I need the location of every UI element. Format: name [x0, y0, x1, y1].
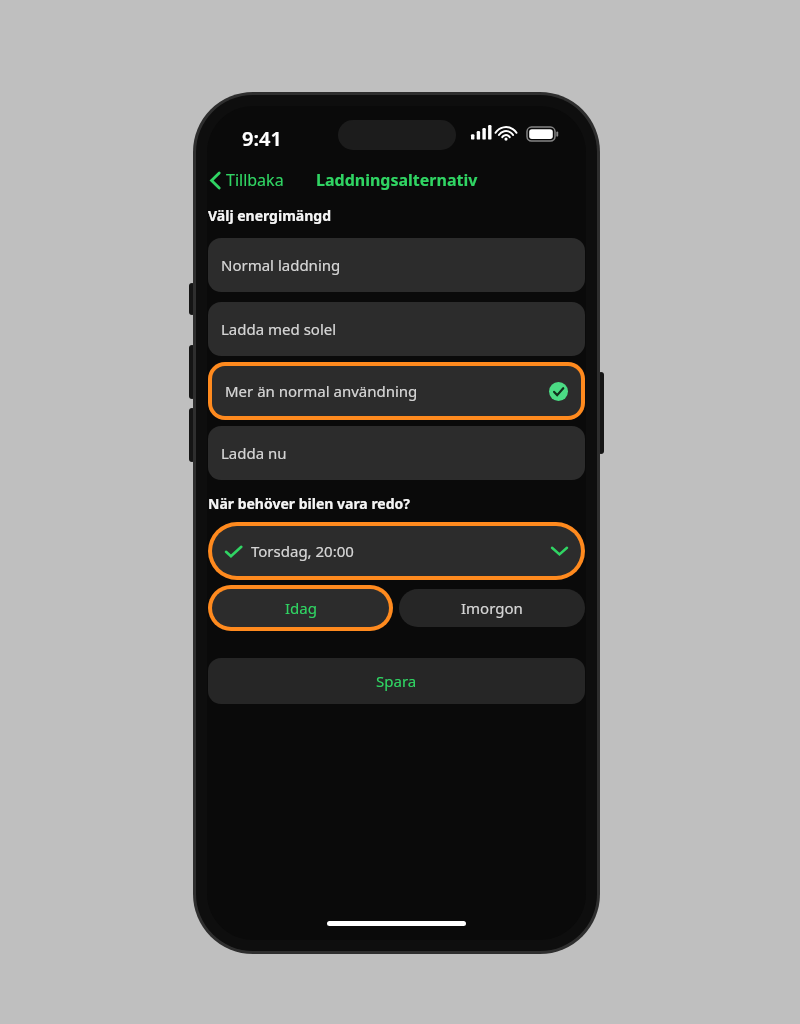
staticText: Mer än normal användning: [225, 381, 549, 401]
button[interactable]: Idag: [212, 589, 389, 627]
staticText: Ladda med solel: [221, 319, 572, 339]
other: Expand: [551, 546, 568, 556]
staticText: När behöver bilen vara redo?: [208, 494, 410, 513]
staticText: 9:41: [242, 125, 282, 152]
button[interactable]: Ladda med solel: [208, 302, 585, 356]
button[interactable]: Ladda nu: [208, 426, 585, 480]
button[interactable]: Normal laddning: [208, 238, 585, 292]
button[interactable]: Spara: [208, 658, 585, 704]
staticText: Laddningsalternativ: [316, 169, 478, 191]
staticText: Normal laddning: [221, 255, 572, 275]
button[interactable]: Mer än normal användning: [212, 366, 581, 416]
staticText: Tillbaka: [226, 169, 284, 191]
button[interactable]: Tillbaka: [207, 164, 287, 196]
staticText: Imorgon: [461, 598, 523, 618]
button[interactable]: Torsdag, 20:00: [212, 526, 581, 576]
staticText: Ladda nu: [221, 443, 572, 463]
staticText: Idag: [285, 598, 317, 618]
staticText: Torsdag, 20:00: [251, 541, 551, 561]
button[interactable]: Imorgon: [399, 589, 585, 627]
staticText: Spara: [376, 671, 417, 691]
staticText: Välj energimängd: [208, 206, 331, 225]
